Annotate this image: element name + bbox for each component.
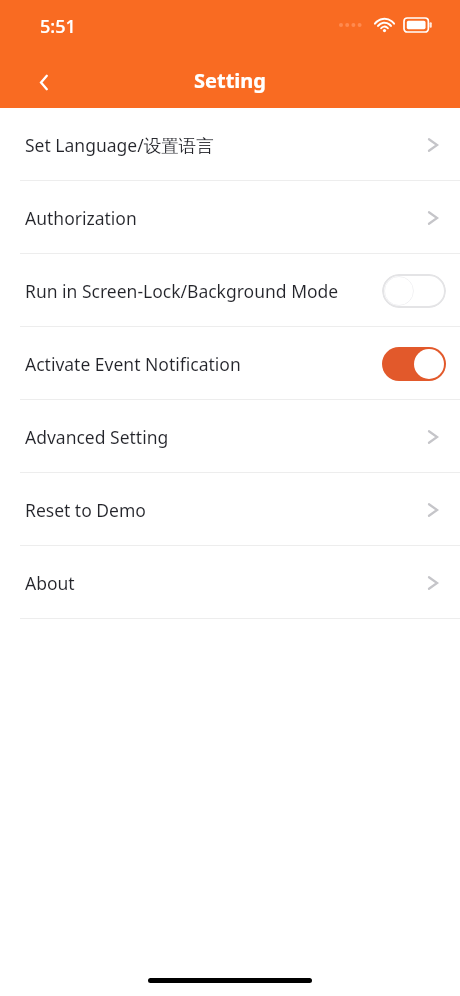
button[interactable]: Authorization [0,181,460,254]
button[interactable]: Reset to Demo [0,473,460,546]
staticText: About [25,571,422,595]
staticText: Authorization [25,206,422,230]
button[interactable]: Set Language/设置语言 [0,108,460,181]
button[interactable] [382,274,446,308]
staticText: Activate Event Notification [25,352,382,376]
staticText: Set Language/设置语言 [25,133,422,157]
staticText: Advanced Setting [25,425,422,449]
staticText: 5:51 [40,14,76,39]
button[interactable] [382,347,446,381]
button[interactable]: Activate Event Notification [0,327,460,400]
button[interactable]: Advanced Setting [0,400,460,473]
staticText: Setting [194,67,266,94]
button[interactable]: Back [24,62,64,102]
button[interactable]: Run in Screen-Lock/Background Mode [0,254,460,327]
staticText: Reset to Demo [25,498,422,522]
button[interactable]: About [0,546,460,619]
staticText: Run in Screen-Lock/Background Mode [25,279,382,303]
